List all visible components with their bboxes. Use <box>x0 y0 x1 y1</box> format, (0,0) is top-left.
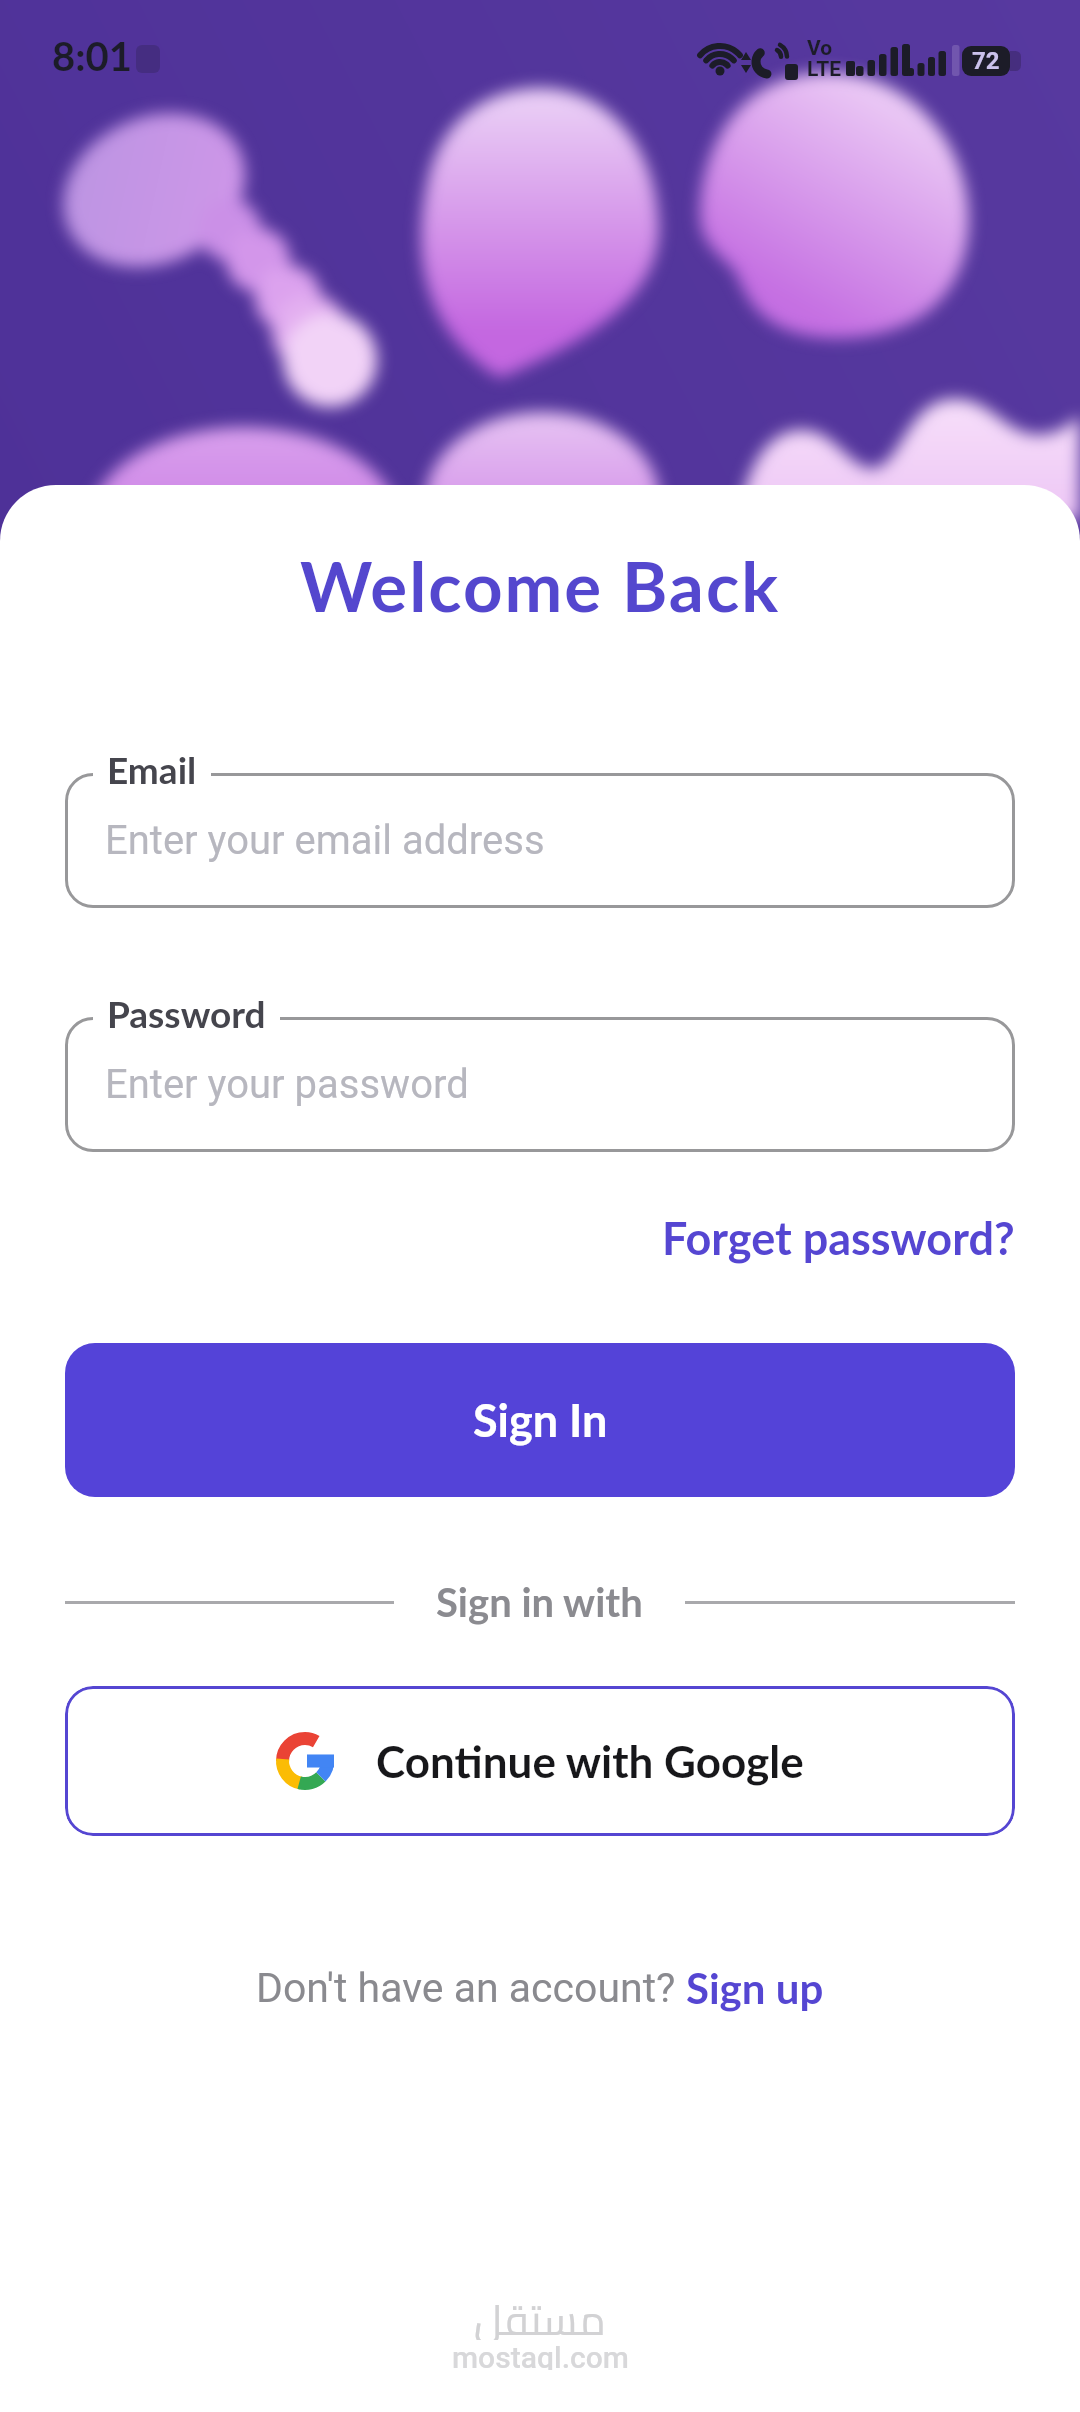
staticText: Enter your password <box>105 1061 469 1108</box>
staticText: Continue with Google <box>376 1735 804 1788</box>
staticText: 72 <box>972 47 1000 75</box>
staticText: Don't have an account? <box>256 1964 686 2012</box>
staticText: Forget password? <box>662 1211 1015 1265</box>
staticText: Enter your email address <box>105 817 545 864</box>
staticText: Sign up <box>686 1963 824 2013</box>
staticText: Email <box>107 747 197 791</box>
staticText: 8:01 <box>52 32 132 80</box>
staticText: مستقل <box>474 2280 606 2340</box>
button[interactable]: Continue with Google <box>65 1686 1015 1836</box>
staticText: Sign In <box>473 1393 608 1447</box>
staticText: Vo <box>807 36 833 61</box>
button[interactable]: Sign In <box>65 1343 1015 1497</box>
staticText: Sign in with <box>436 1578 643 1626</box>
button[interactable]: Forget password? <box>662 1211 1015 1265</box>
button[interactable]: Enter your password <box>65 991 1015 1152</box>
staticText: Welcome Back <box>300 544 781 627</box>
button[interactable]: Enter your email address <box>65 747 1015 908</box>
staticText: LTE <box>807 57 842 82</box>
staticText: Password <box>107 991 266 1035</box>
staticText: mostaql.com <box>452 2340 629 2370</box>
button[interactable]: Sign up <box>686 1963 824 2013</box>
